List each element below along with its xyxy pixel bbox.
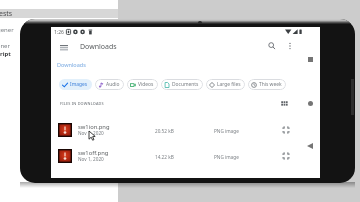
staticText: Nov 1, 2020 — [78, 130, 104, 136]
button[interactable]: sw1off.png — [51, 143, 320, 169]
button[interactable]: Home — [305, 98, 315, 108]
button[interactable]: Audio — [95, 79, 124, 90]
button[interactable]: Expand file details — [280, 124, 292, 136]
button[interactable]: Open navigation drawer — [57, 41, 71, 55]
staticText: Nov 1, 2020 — [78, 156, 104, 162]
staticText: Downloads — [80, 42, 117, 52]
button[interactable]: Videos — [127, 79, 158, 90]
staticText: Downloads — [57, 61, 86, 68]
button[interactable]: This week — [248, 79, 286, 90]
staticText: Documents — [172, 81, 199, 88]
button[interactable]: Recent apps — [305, 54, 315, 64]
button[interactable]: Search — [265, 39, 279, 53]
staticText: gener — [0, 26, 14, 34]
staticText: 20.52 kB — [155, 128, 174, 134]
staticText: ener — [0, 42, 10, 50]
button[interactable]: Images — [59, 79, 92, 90]
staticText: sw1ion.png — [78, 123, 110, 131]
staticText: PNG image — [214, 128, 239, 134]
staticText: 14.22 kB — [155, 154, 174, 160]
button[interactable]: Downloads — [57, 60, 86, 69]
staticText: ests — [0, 9, 13, 19]
staticText: Videos — [138, 81, 154, 88]
button[interactable]: Expand file details — [280, 150, 292, 162]
button[interactable]: Documents — [161, 79, 203, 90]
staticText: cript — [0, 50, 11, 58]
staticText: PNG image — [214, 154, 239, 160]
staticText: FILES IN DOWNLOADS — [60, 101, 104, 106]
staticText: This week — [259, 81, 282, 88]
staticText: Audio — [106, 81, 120, 88]
staticText: Images — [70, 81, 88, 88]
button[interactable]: Large files — [206, 79, 245, 90]
button[interactable]: Grid view — [278, 97, 290, 109]
button[interactable]: Back — [305, 141, 315, 151]
staticText: Large files — [217, 81, 241, 88]
staticText: 1:26 — [54, 29, 64, 36]
staticText: sw1off.png — [78, 149, 109, 157]
button[interactable]: More options — [283, 39, 297, 53]
button[interactable]: sw1ion.png — [51, 117, 320, 143]
